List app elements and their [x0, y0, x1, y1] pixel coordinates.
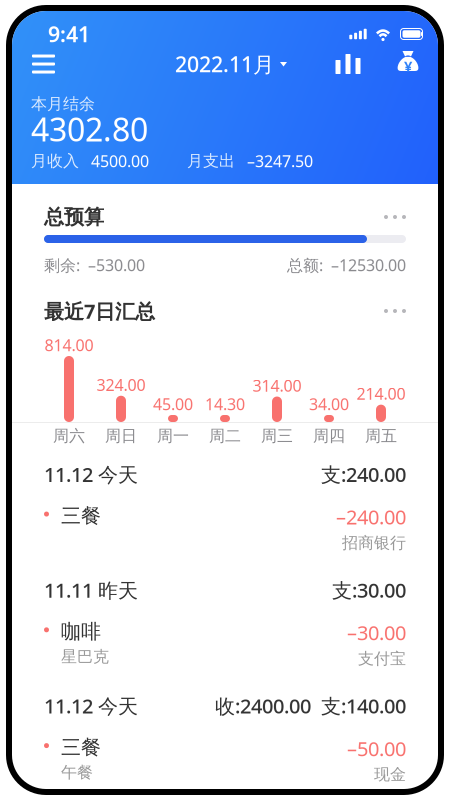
staticText: 支:240.00: [321, 461, 406, 488]
staticText: 34.00: [309, 393, 349, 415]
staticText: 最近7日汇总: [44, 298, 155, 324]
staticText: –3247.50: [235, 150, 313, 172]
button[interactable]: Menu: [22, 46, 65, 82]
staticText: 周日: [105, 426, 137, 446]
staticText: 午餐: [61, 763, 93, 782]
staticText: 214.00: [356, 383, 405, 404]
staticText: 本月结余: [31, 94, 95, 114]
staticText: 324.00: [96, 374, 145, 395]
staticText: 周二: [209, 426, 241, 446]
staticText: ¥: [404, 56, 412, 76]
staticText: 4500.00: [79, 150, 149, 172]
staticText: 三餐: [61, 504, 101, 528]
staticText: 剩余: –530.00: [44, 254, 145, 276]
staticText: 314.00: [252, 375, 301, 396]
staticText: 11.12 今天: [44, 461, 138, 488]
button[interactable]: 零食: [12, 792, 438, 800]
staticText: 咖啡: [61, 619, 101, 644]
staticText: 星巴克: [61, 647, 109, 667]
button[interactable]: More options: [370, 206, 406, 228]
button[interactable]: 三餐: [12, 727, 438, 792]
staticText: 收:2400.00 支:140.00: [215, 692, 406, 719]
staticText: 周六: [53, 426, 85, 446]
staticText: 招商银行: [342, 533, 406, 553]
staticText: 支:30.00: [332, 577, 406, 603]
staticText: 现金: [374, 765, 406, 784]
staticText: 2022.11月: [175, 50, 274, 78]
staticText: 周五: [365, 426, 397, 446]
staticText: –240.00: [336, 504, 406, 530]
staticText: 14.30: [205, 393, 245, 415]
staticText: 月收入: [31, 151, 79, 171]
button[interactable]: 咖啡: [12, 611, 438, 676]
staticText: 三餐: [61, 735, 101, 760]
staticText: 周四: [313, 426, 345, 446]
staticText: 周一: [157, 426, 189, 446]
button[interactable]: 2022.11月: [175, 46, 287, 82]
staticText: 4302.80: [31, 108, 148, 150]
staticText: 周三: [261, 426, 293, 446]
staticText: 9:41: [48, 20, 90, 48]
staticText: 支付宝: [358, 649, 406, 669]
staticText: 814.00: [44, 334, 93, 356]
staticText: –50.00: [347, 735, 406, 762]
staticText: 月支出: [187, 151, 235, 171]
staticText: 总额: –12530.00: [287, 254, 406, 276]
staticText: –30.00: [347, 619, 406, 646]
button[interactable]: More options: [370, 300, 406, 322]
button[interactable]: 三餐: [12, 496, 438, 561]
button[interactable]: Statistics: [329, 46, 367, 82]
staticText: 11.11 昨天: [44, 577, 138, 603]
staticText: 总预算: [44, 205, 104, 229]
staticText: 45.00: [153, 393, 193, 415]
staticText: 11.12 今天: [44, 692, 138, 719]
button[interactable]: Budget: [390, 46, 426, 82]
